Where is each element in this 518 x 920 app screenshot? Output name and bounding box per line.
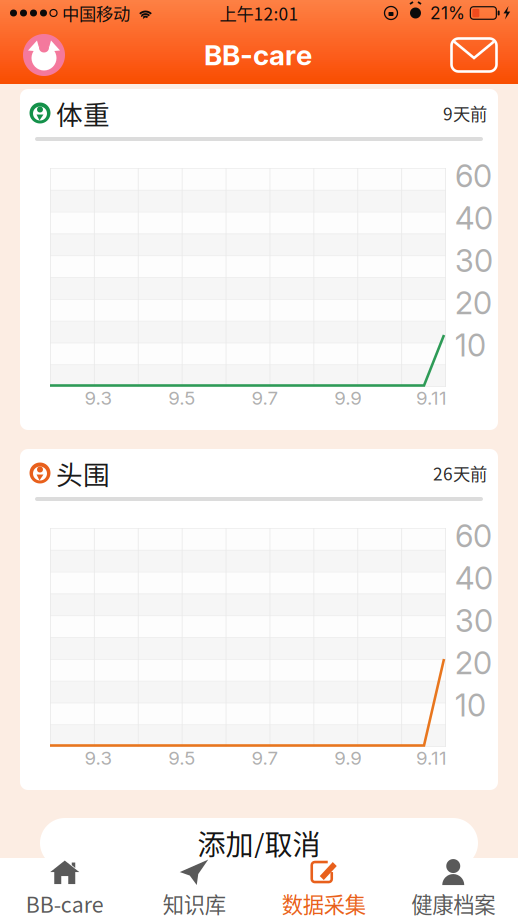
staticText: 60 (455, 158, 492, 195)
button[interactable]: 健康档案 (388, 858, 518, 920)
staticText: 40 (455, 200, 493, 237)
staticText: 9.7 (251, 387, 278, 409)
button[interactable]: BB-care (0, 858, 129, 920)
button[interactable]: 知识库 (129, 858, 259, 920)
staticText: 健康档案 (411, 888, 495, 919)
staticText: 20 (455, 284, 492, 322)
staticText: 9.5 (168, 387, 195, 409)
staticText: 30 (455, 242, 493, 279)
staticText: BB-care (204, 38, 312, 72)
staticText: 9.11 (416, 387, 447, 409)
staticText: 体重 (56, 94, 110, 132)
staticText: 上午12:01 (219, 0, 298, 26)
staticText: 30 (455, 602, 493, 639)
staticText: 10 (455, 687, 486, 724)
button[interactable]: Profile (22, 33, 66, 77)
staticText: 9.7 (251, 747, 278, 769)
button[interactable]: 添加/取消 (40, 818, 478, 868)
staticText: 中国移动 (62, 0, 130, 26)
staticText: 40 (455, 560, 493, 597)
staticText: 数据采集 (282, 888, 366, 919)
staticText: 9天前 (443, 100, 487, 126)
staticText: 知识库 (163, 888, 226, 919)
staticText: 21% (430, 2, 465, 23)
button[interactable]: Messages (450, 37, 498, 73)
staticText: 头围 (56, 454, 110, 492)
staticText: 添加/取消 (197, 823, 320, 863)
staticText: 9.3 (84, 747, 112, 769)
staticText: 9.11 (416, 747, 447, 769)
staticText: 9.9 (334, 747, 362, 769)
staticText: 60 (455, 518, 492, 555)
staticText: 9.5 (168, 747, 195, 769)
staticText: 20 (455, 644, 492, 682)
staticText: 9.9 (334, 387, 362, 409)
staticText: 26天前 (433, 460, 487, 486)
staticText: 9.3 (84, 387, 112, 409)
staticText: BB-care (26, 888, 104, 919)
staticText: 10 (455, 327, 486, 364)
button[interactable]: 数据采集 (259, 858, 388, 920)
